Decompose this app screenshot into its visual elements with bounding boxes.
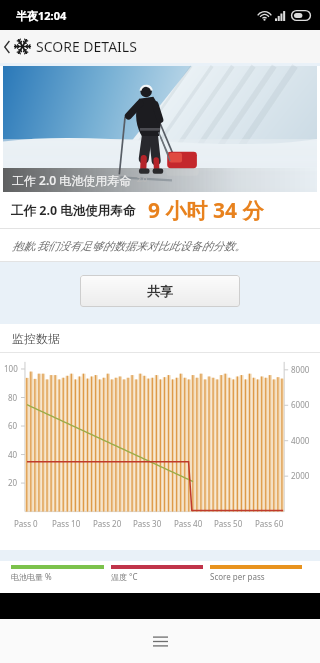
staticText: 9 小时 34 分 (148, 196, 264, 225)
staticText: Pass 20 (93, 518, 122, 529)
staticText: 半夜12:04 (16, 8, 67, 23)
staticText: Score per pass (210, 571, 265, 582)
staticText: 80 (8, 392, 18, 403)
staticText: 20 (8, 477, 18, 488)
button[interactable]: Back (0, 30, 320, 63)
staticText: 40 (8, 449, 18, 460)
button[interactable]: 共享 (80, 275, 240, 307)
button[interactable]: Score per pass (210, 565, 309, 582)
staticText: 共享 (147, 283, 173, 299)
staticText: 8000 (291, 364, 310, 375)
staticText: 温度 °C (111, 571, 138, 582)
staticText: 4000 (291, 435, 310, 446)
staticText: 100 (4, 363, 18, 374)
staticText: 监控数据 (12, 331, 60, 346)
staticText: 2.0 (137, 175, 147, 185)
staticText: Pass 10 (52, 518, 81, 529)
button[interactable]: 电池电量 % (11, 565, 111, 582)
staticText: 工作 2.0 电池使用寿命 (11, 202, 136, 219)
staticText: Pass 0 (14, 518, 38, 529)
staticText: Pass 50 (214, 518, 243, 529)
staticText: 工作 2.0 电池使用寿命 (12, 172, 132, 188)
staticText: Pass 30 (133, 518, 162, 529)
staticText: 6000 (291, 399, 310, 410)
button[interactable]: Menu (140, 621, 180, 661)
staticText: 2000 (291, 470, 310, 481)
staticText: 抱歉,我们没有足够的数据来对比此设备的分数。 (12, 238, 246, 253)
button[interactable]: Back (0, 33, 14, 61)
staticText: 60 (8, 420, 18, 431)
button[interactable]: 温度 °C (111, 565, 210, 582)
staticText: Pass 60 (255, 518, 284, 529)
staticText: SCORE DETAILS (36, 37, 137, 56)
staticText: 电池电量 % (11, 571, 52, 582)
staticText: Pass 40 (174, 518, 203, 529)
